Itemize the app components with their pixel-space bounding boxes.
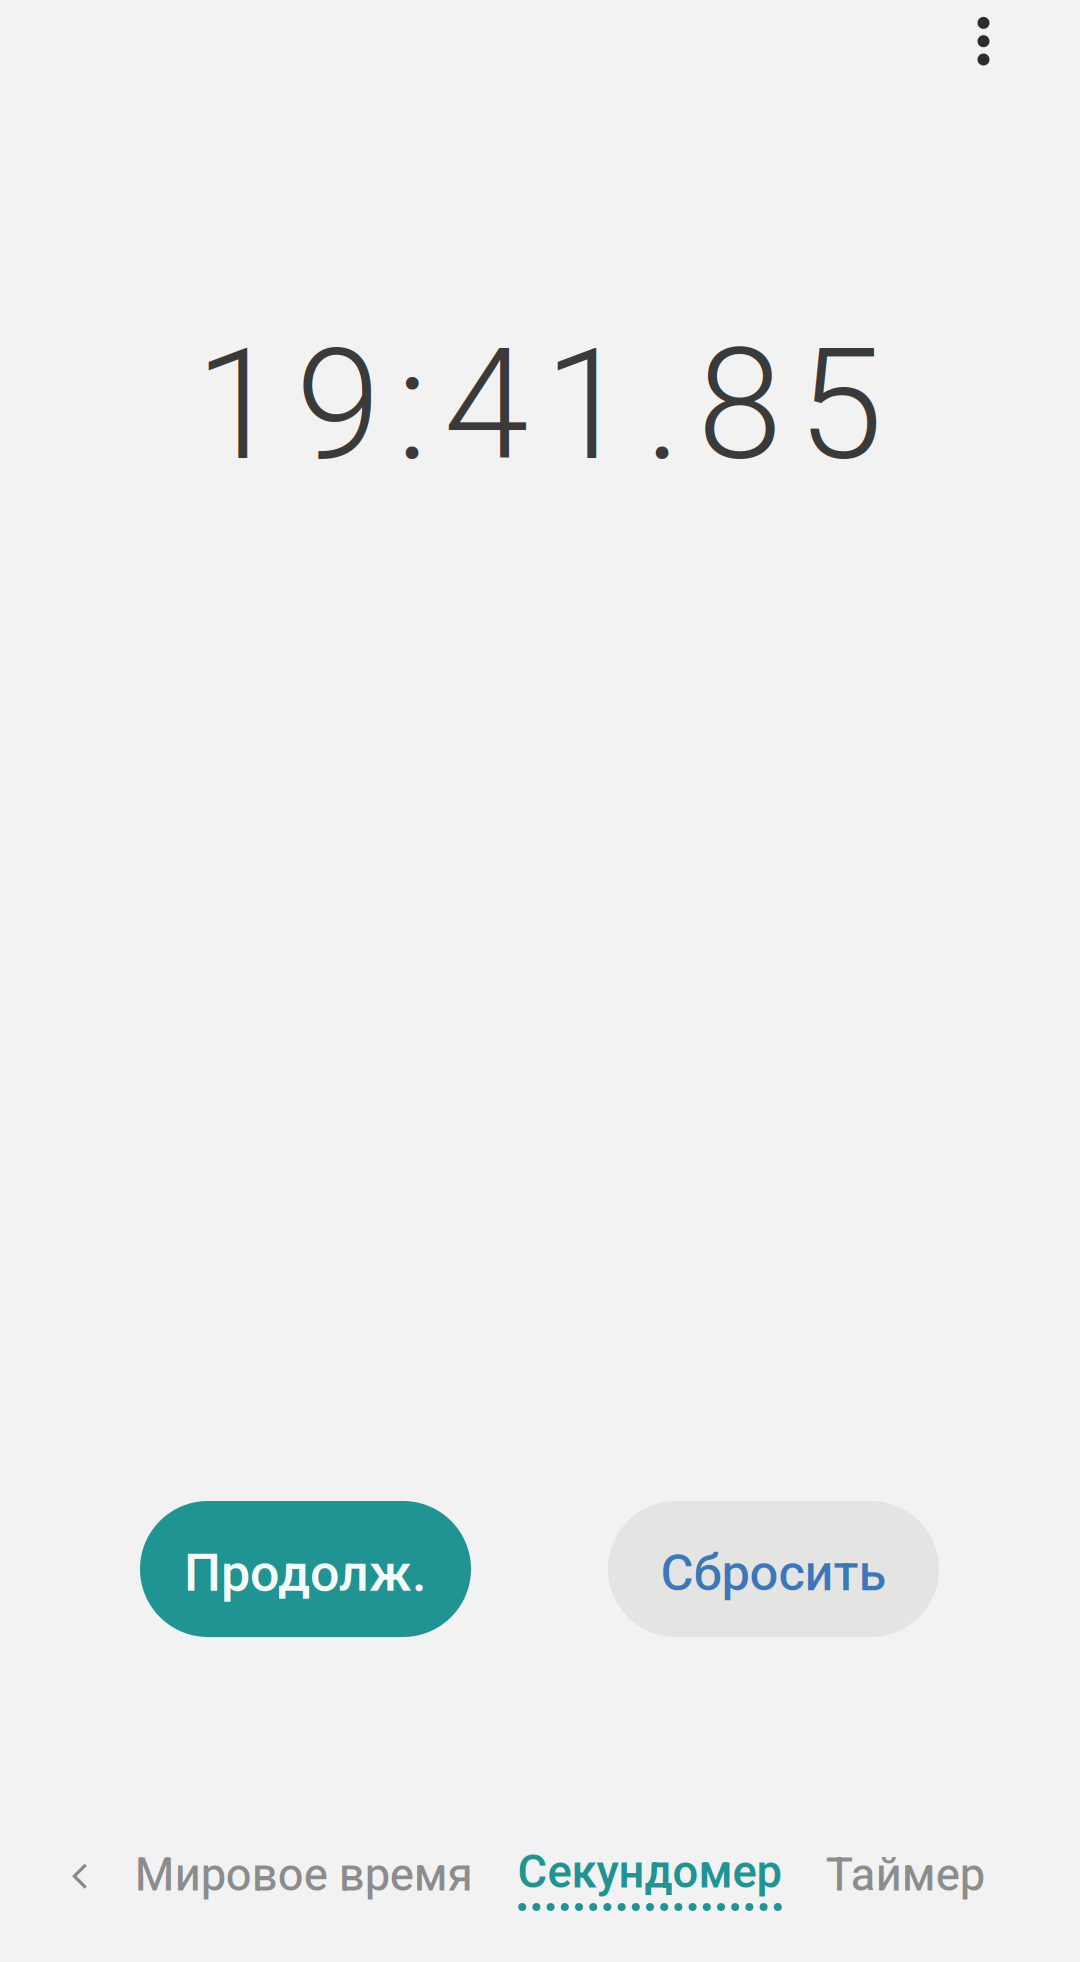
staticText: Продолж. (184, 1542, 427, 1603)
button[interactable]: Back (42, 1834, 118, 1918)
button[interactable]: Секундомер (499, 1823, 799, 1927)
button[interactable]: More options (927, 0, 1039, 97)
staticText: 19:41.85 (195, 316, 883, 495)
staticText: Сбросить (660, 1543, 886, 1603)
staticText: Таймер (826, 1848, 985, 1901)
button[interactable]: Продолж. (140, 1501, 471, 1637)
button[interactable]: Мировое время (120, 1823, 488, 1927)
staticText: Мировое время (135, 1848, 473, 1901)
button[interactable]: Таймер (808, 1823, 1002, 1927)
button[interactable]: Сбросить (608, 1501, 939, 1637)
staticText: Секундомер (517, 1845, 781, 1898)
